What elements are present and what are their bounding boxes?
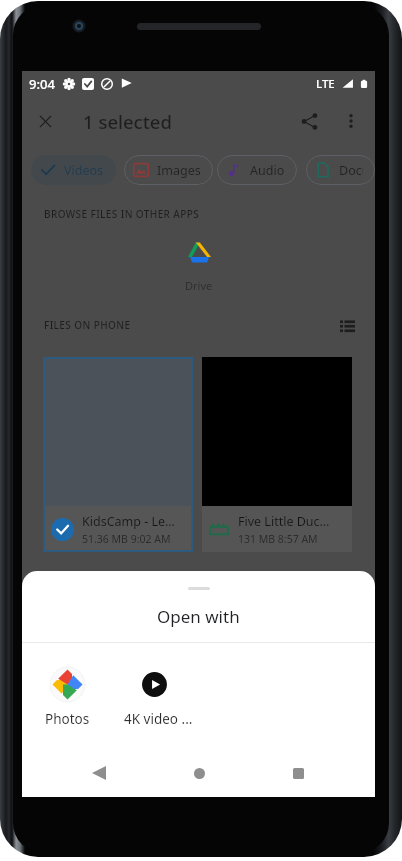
staticText: Videos xyxy=(64,162,104,179)
button[interactable]: Audio xyxy=(217,155,297,185)
staticText: LTE xyxy=(316,76,335,92)
button[interactable]: Back xyxy=(77,751,121,795)
staticText: 9:04 xyxy=(29,75,55,93)
staticText: Five Little Duc… xyxy=(238,513,330,530)
button[interactable]: Videos xyxy=(31,155,116,185)
button[interactable]: Images xyxy=(124,155,213,185)
staticText: BROWSE FILES IN OTHER APPS xyxy=(44,207,200,221)
button[interactable]: Close selection xyxy=(25,101,65,141)
staticText: 131 MB 8:57 AM xyxy=(238,532,318,546)
button[interactable]: Home xyxy=(177,751,221,795)
button[interactable]: Five Little Duc… xyxy=(202,357,352,552)
button[interactable]: Photos xyxy=(37,667,97,728)
staticText: KidsCamp - Le… xyxy=(82,513,175,530)
button[interactable]: 4K video ... xyxy=(124,667,184,728)
button[interactable]: Recent apps xyxy=(276,751,320,795)
button[interactable]: Documen xyxy=(306,155,375,185)
staticText: Drive xyxy=(185,278,213,293)
staticText: 51.36 MB 9:02 AM xyxy=(82,532,171,546)
staticText: Photos xyxy=(45,710,90,728)
button[interactable]: KidsCamp - Le… xyxy=(43,357,193,552)
staticText: Documen xyxy=(339,162,363,179)
button[interactable]: More options xyxy=(333,103,369,139)
button[interactable]: Drive xyxy=(169,241,229,293)
button[interactable]: Switch to list view xyxy=(337,315,357,335)
button[interactable]: Share xyxy=(289,101,329,141)
staticText: FILES ON PHONE xyxy=(44,318,131,332)
staticText: Open with xyxy=(157,605,240,628)
staticText: 1 selected xyxy=(83,109,172,134)
staticText: 4K video ... xyxy=(124,710,184,728)
staticText: Audio xyxy=(250,162,285,179)
staticText: Images xyxy=(157,162,201,179)
